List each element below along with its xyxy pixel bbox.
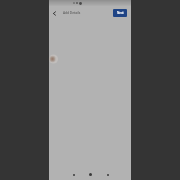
button[interactable]: Back bbox=[69, 170, 78, 179]
button[interactable]: Home bbox=[86, 170, 95, 179]
button[interactable]: Next bbox=[113, 9, 127, 17]
staticText: Add Details bbox=[63, 11, 81, 15]
button[interactable]: Recents bbox=[103, 170, 112, 179]
button[interactable]: Back bbox=[51, 10, 58, 17]
staticText: Next bbox=[117, 11, 124, 15]
